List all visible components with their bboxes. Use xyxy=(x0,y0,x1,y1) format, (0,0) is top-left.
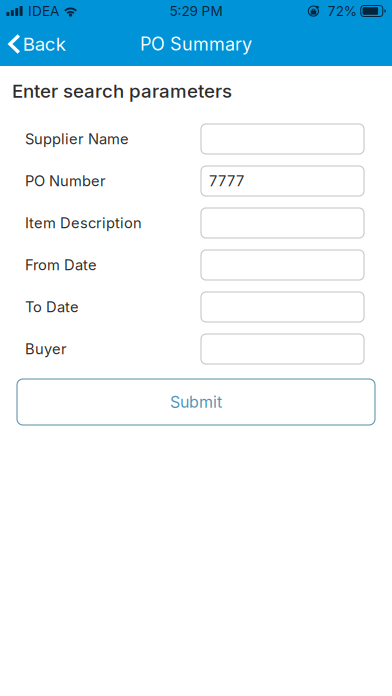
button[interactable]: PO Number xyxy=(201,166,364,196)
staticText: Buyer xyxy=(25,340,67,358)
staticText: From Date xyxy=(25,256,97,274)
button[interactable]: Supplier Name xyxy=(201,124,364,154)
staticText: Submit xyxy=(170,392,222,412)
staticText: To Date xyxy=(25,298,79,316)
button[interactable]: Buyer xyxy=(201,334,364,364)
button[interactable]: From Date xyxy=(201,250,364,280)
button[interactable]: Item Description xyxy=(201,208,364,238)
staticText: 72% xyxy=(328,3,357,19)
button[interactable]: Back xyxy=(0,22,78,66)
staticText: Enter search parameters xyxy=(12,80,232,102)
button[interactable]: Submit xyxy=(17,379,375,425)
staticText: 5:29 PM xyxy=(169,3,222,19)
button[interactable]: To Date xyxy=(201,292,364,322)
staticText: IDEA xyxy=(28,3,59,19)
staticText: PO Summary xyxy=(140,33,252,55)
staticText: PO Number xyxy=(25,172,106,190)
staticText: Item Description xyxy=(25,214,142,232)
staticText: Back xyxy=(23,33,66,55)
staticText: 7777 xyxy=(209,172,244,190)
staticText: Supplier Name xyxy=(25,130,129,148)
